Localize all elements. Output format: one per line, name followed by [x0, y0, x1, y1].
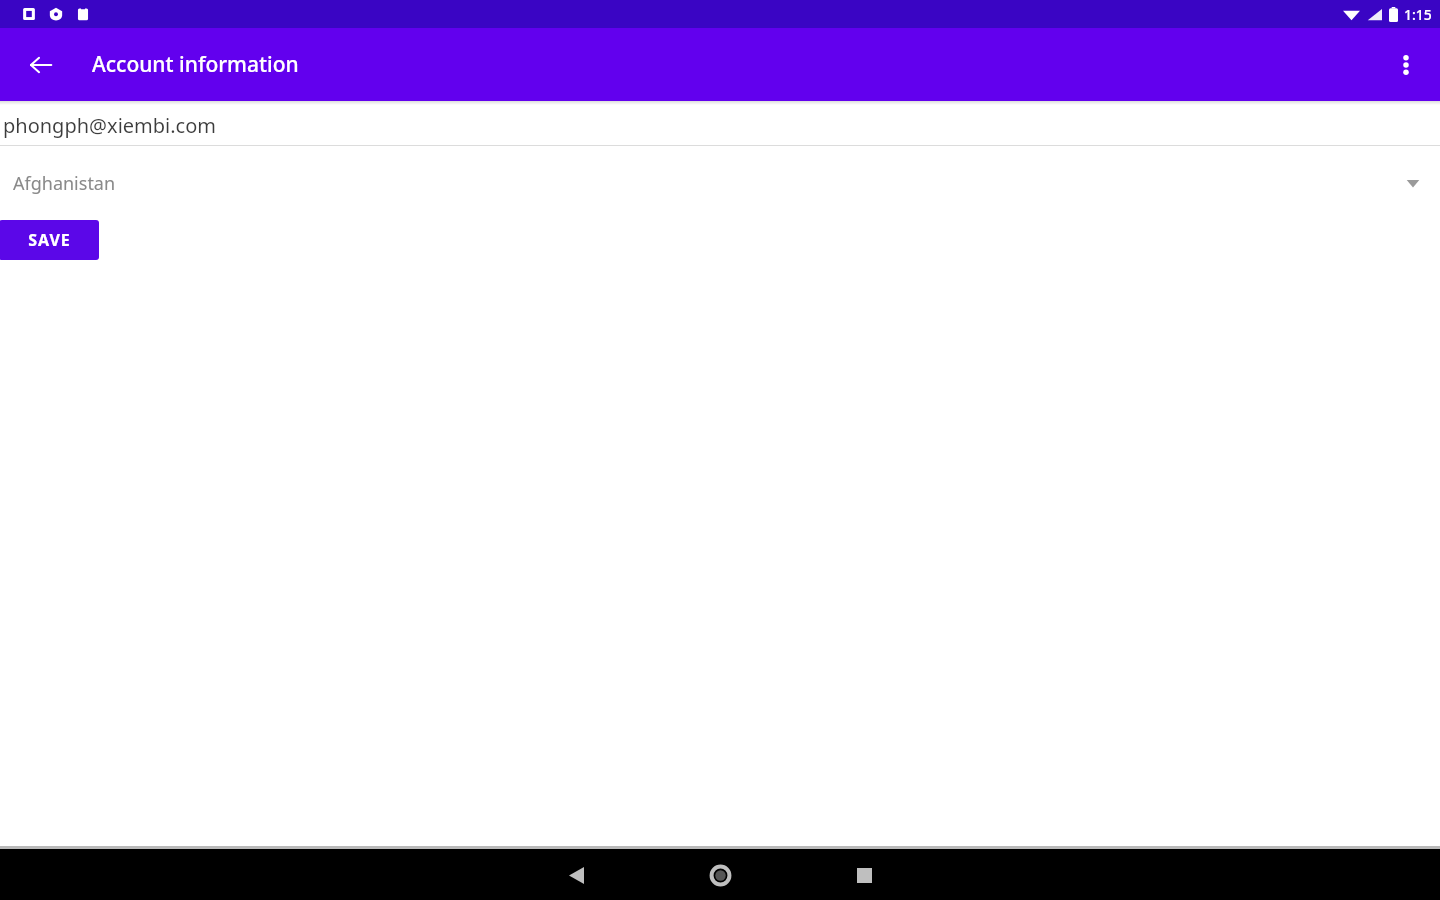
- staticText: 1:15: [1404, 5, 1432, 24]
- staticText: SAVE: [28, 229, 71, 251]
- button[interactable]: Recent apps: [840, 851, 888, 899]
- staticText: Account information: [92, 50, 299, 79]
- staticText: phongph@xiembi.com: [3, 112, 216, 139]
- staticText: Afghanistan: [13, 171, 116, 196]
- button[interactable]: Home: [696, 851, 744, 899]
- button[interactable]: More options: [1382, 41, 1430, 89]
- button[interactable]: Afghanistan: [0, 146, 1440, 220]
- button[interactable]: SAVE: [0, 220, 99, 260]
- button[interactable]: Navigate up: [17, 41, 65, 89]
- button[interactable]: Back: [552, 851, 600, 899]
- button[interactable]: phongph@xiembi.com: [0, 105, 1440, 146]
